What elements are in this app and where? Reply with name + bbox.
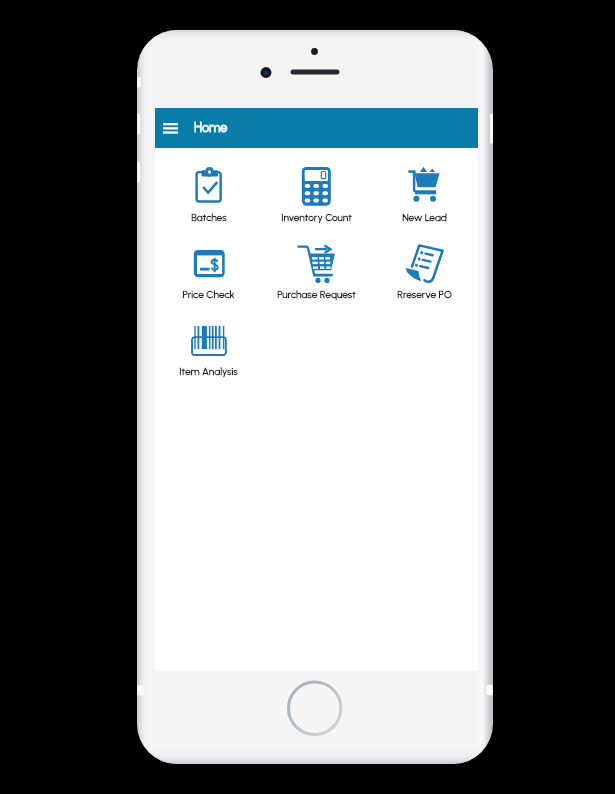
button[interactable]: Open navigation menu [155, 108, 193, 148]
staticText: Item Analysis [179, 365, 238, 377]
staticText: Home [194, 120, 228, 135]
button[interactable]: Price Check [155, 225, 262, 302]
button[interactable]: Inventory Count [262, 148, 370, 225]
button[interactable]: New Lead [370, 148, 478, 225]
staticText: Purchase Request [277, 288, 356, 300]
button[interactable]: Batches [155, 148, 262, 225]
staticText: Inventory Count [281, 211, 352, 223]
button[interactable]: Item Analysis [155, 302, 262, 379]
staticText: Rreserve PO [397, 288, 452, 300]
staticText: Price Check [182, 288, 235, 300]
button[interactable]: Purchase Request [262, 225, 370, 302]
button[interactable]: Rreserve PO [370, 225, 478, 302]
staticText: New Lead [402, 211, 447, 223]
staticText: Batches [191, 211, 227, 223]
